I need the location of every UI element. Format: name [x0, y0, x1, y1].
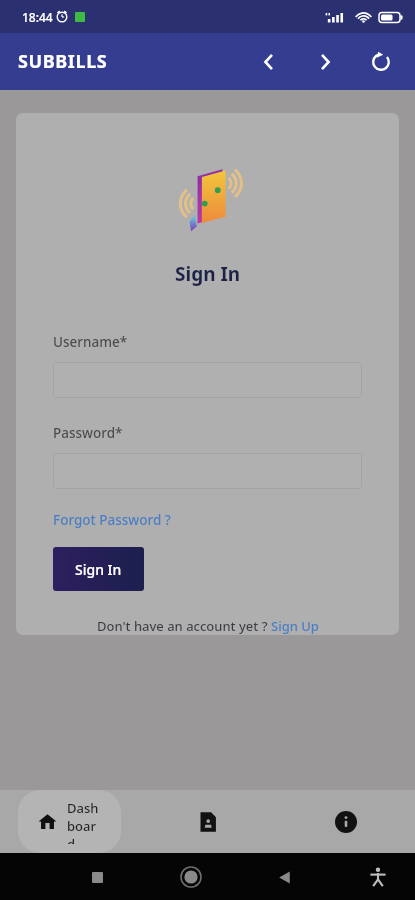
staticText: Sign In [175, 261, 241, 287]
staticText: Username* [53, 333, 128, 351]
button[interactable]: Home [172, 858, 210, 896]
button[interactable]: Forgot Password ? [53, 511, 362, 529]
button[interactable]: Back [265, 858, 303, 896]
staticText: 18:44 [22, 9, 53, 25]
button[interactable] [53, 453, 362, 489]
staticText: SUBBILLS [18, 49, 108, 74]
button[interactable]: Refresh [361, 42, 401, 82]
staticText: Forgot Password ? [53, 511, 171, 529]
button[interactable]: Documents [139, 790, 277, 853]
button[interactable]: Info [277, 790, 415, 853]
button[interactable]: Dashboard [18, 790, 121, 853]
staticText: Dashboard [67, 799, 101, 844]
button[interactable]: Don't have an account yet ? [53, 617, 362, 635]
button[interactable]: Sign In [53, 547, 144, 591]
staticText: Password* [53, 424, 123, 442]
staticText: Don't have an account yet ? [97, 617, 271, 635]
button[interactable]: Back [249, 42, 289, 82]
button[interactable]: Accessibility [359, 858, 397, 896]
staticText: Sign Up [271, 617, 319, 635]
button[interactable]: Forward [305, 42, 345, 82]
staticText: Sign In [75, 560, 122, 579]
button[interactable]: Recent apps [78, 858, 116, 896]
button[interactable] [53, 362, 362, 398]
